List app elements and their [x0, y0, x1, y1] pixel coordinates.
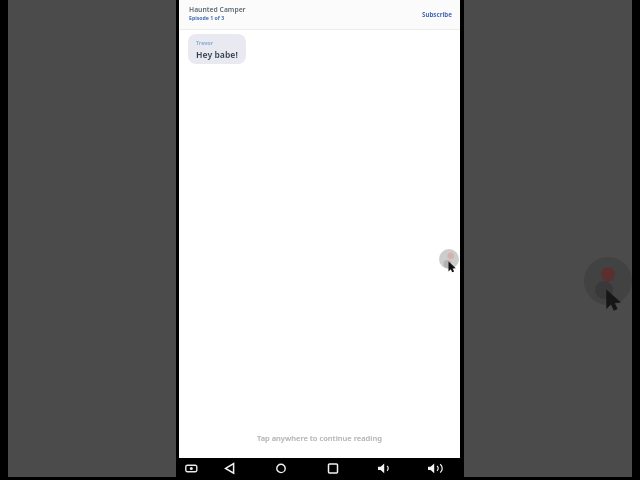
staticText: Episode 1 of 3	[189, 14, 225, 21]
button[interactable]	[426, 462, 442, 475]
staticText: Hey babe!	[196, 49, 238, 61]
button[interactable]	[274, 462, 288, 475]
staticText: Tap anywhere to continue reading	[257, 433, 382, 443]
button[interactable]	[223, 462, 237, 475]
button[interactable]: Trevor	[188, 34, 246, 64]
button[interactable]: Tap anywhere to continue reading	[179, 433, 460, 443]
button[interactable]	[436, 245, 462, 275]
staticText: Subscribe	[422, 10, 452, 18]
button[interactable]: Subscribe	[422, 10, 452, 18]
button[interactable]: Haunted Camper	[189, 5, 246, 21]
button[interactable]	[326, 462, 340, 475]
staticText: Haunted Camper	[189, 5, 246, 14]
button[interactable]	[376, 462, 392, 475]
staticText: Trevor	[196, 39, 214, 46]
button[interactable]	[184, 462, 200, 475]
